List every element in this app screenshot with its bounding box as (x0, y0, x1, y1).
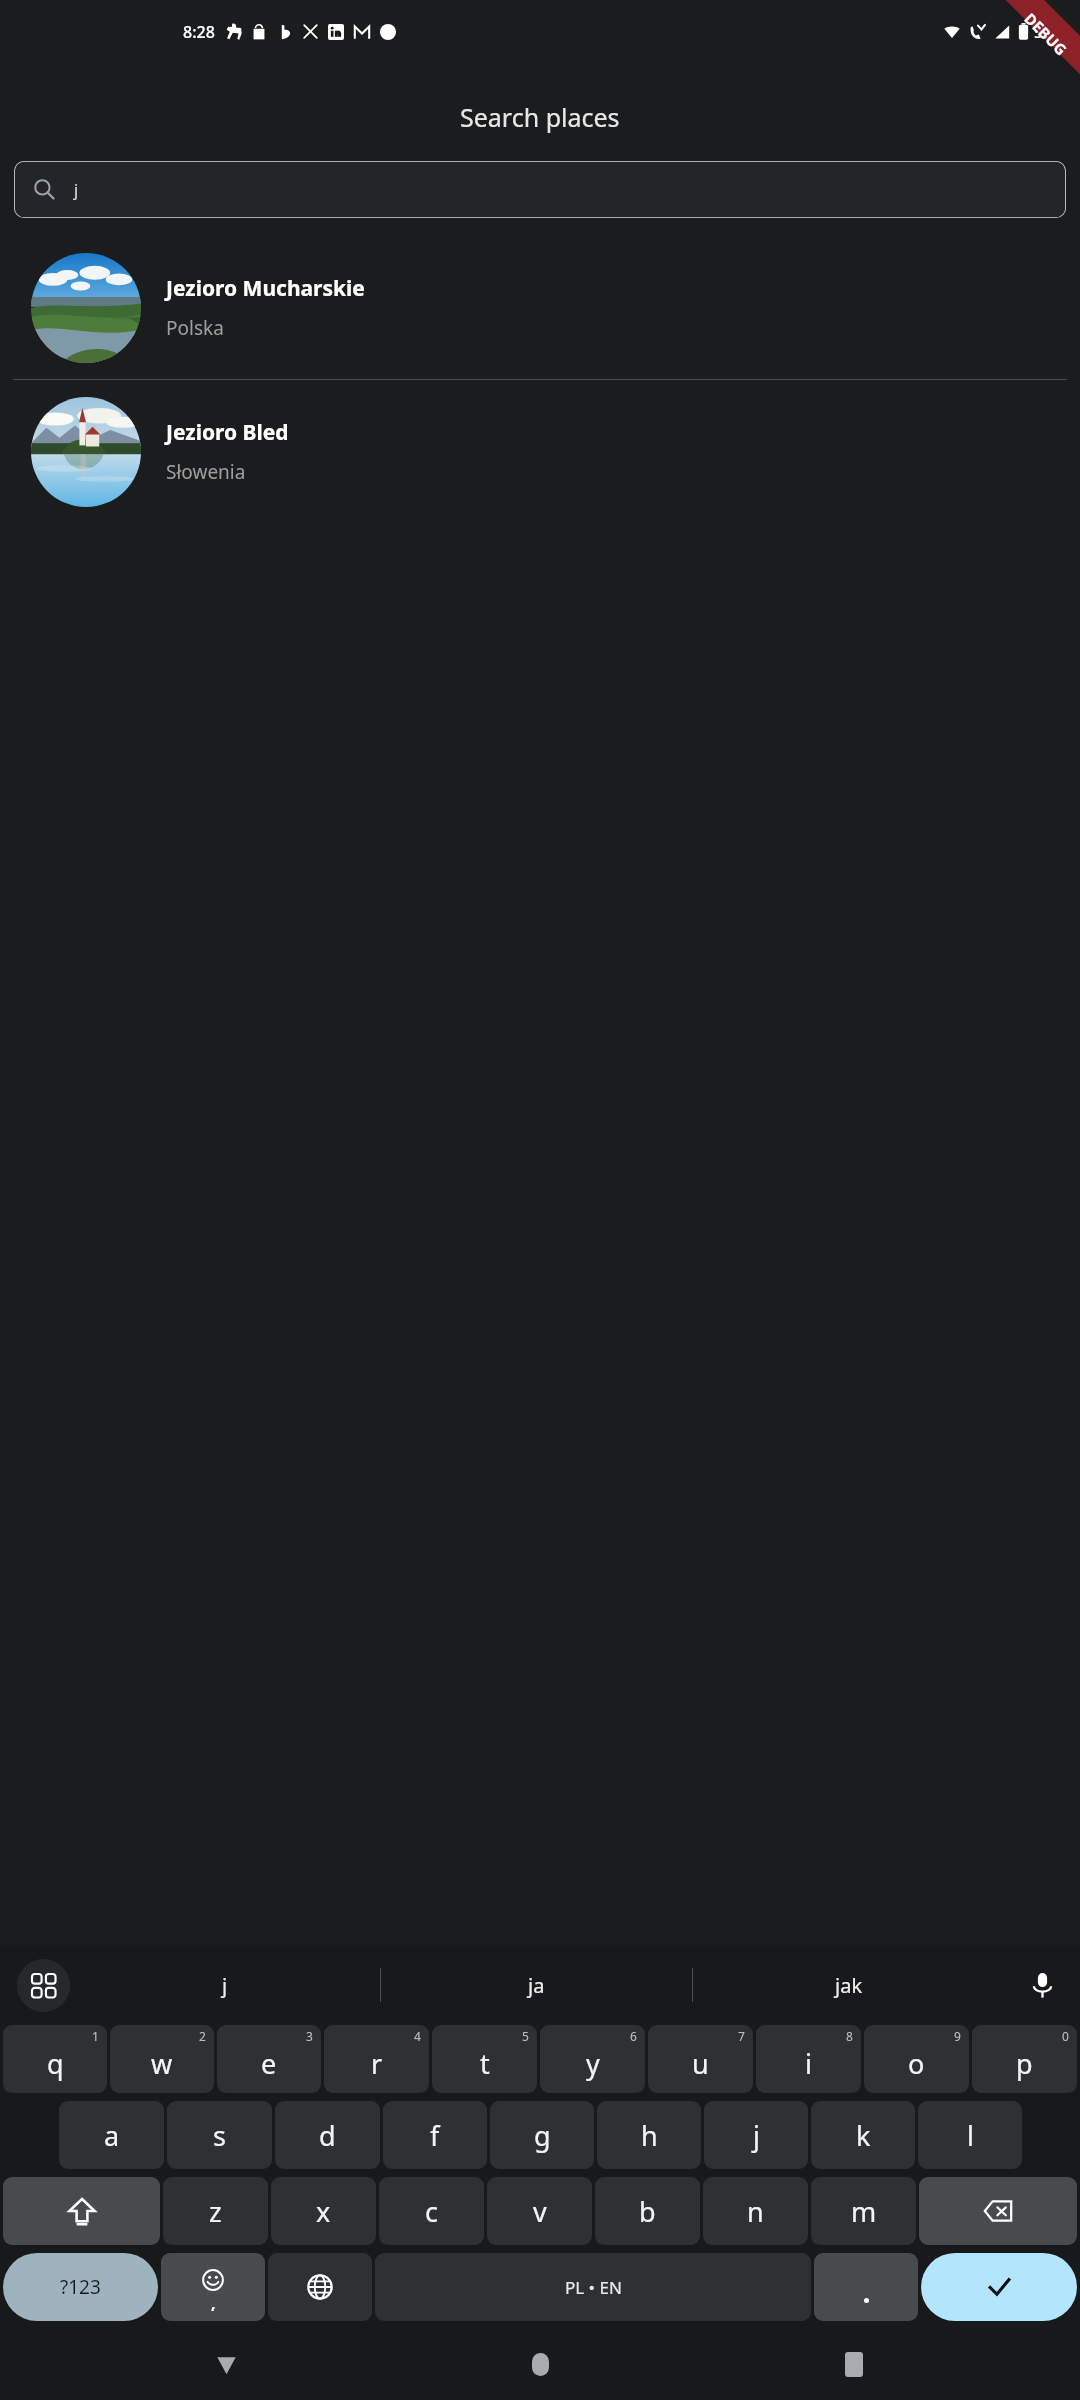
staticText: y (586, 2045, 600, 2082)
staticText: d (319, 2117, 336, 2154)
staticText: a (104, 2117, 120, 2154)
button[interactable]: 3 (217, 2025, 321, 2093)
button[interactable]: 4 (324, 2025, 429, 2093)
staticText: l (967, 2117, 974, 2154)
staticText: j (753, 2117, 760, 2154)
staticText: 9 (954, 2028, 961, 2044)
staticText: Polska (166, 315, 224, 341)
button[interactable]: ja (381, 1945, 692, 2025)
button[interactable]: 7 (648, 2025, 753, 2093)
staticText: x (316, 2193, 331, 2230)
staticText: b (639, 2193, 656, 2230)
staticText: 6 (630, 2028, 637, 2044)
staticText: 3 (306, 2028, 313, 2044)
staticText: s (213, 2117, 226, 2154)
staticText: 1 (92, 2028, 99, 2044)
button[interactable]: 2 (110, 2025, 214, 2093)
button[interactable]: 0 (972, 2025, 1077, 2093)
button[interactable]: Emoji (161, 2253, 265, 2321)
button[interactable]: Jezioro Mucharskie (0, 236, 1080, 379)
button[interactable]: Jezioro Bled (0, 380, 1080, 523)
button[interactable]: m (811, 2177, 916, 2245)
button[interactable]: f (383, 2101, 487, 2169)
button[interactable]: s (167, 2101, 272, 2169)
staticText: f (430, 2117, 440, 2154)
staticText: 5 (522, 2028, 529, 2044)
staticText: r (371, 2045, 383, 2082)
staticText: Jezioro Bled (166, 418, 289, 447)
staticText: z (209, 2193, 222, 2230)
staticText: m (851, 2193, 877, 2230)
staticText: i (805, 2045, 812, 2082)
staticText: e (261, 2045, 277, 2082)
staticText: ja (528, 1972, 545, 1999)
button[interactable]: g (490, 2101, 594, 2169)
button[interactable]: ?123 (3, 2253, 158, 2321)
staticText: jak (835, 1972, 863, 1999)
button[interactable]: 6 (540, 2025, 645, 2093)
button[interactable]: Backspace (919, 2177, 1077, 2245)
button[interactable]: Home (512, 2336, 568, 2392)
button[interactable]: Change language (268, 2253, 372, 2321)
button[interactable]: Period (814, 2253, 918, 2321)
staticText: q (47, 2045, 64, 2082)
staticText: DEBUG (1020, 8, 1071, 59)
staticText: h (641, 2117, 658, 2154)
staticText: v (533, 2193, 547, 2230)
staticText: PL • EN (565, 2276, 622, 2299)
staticText: 8 (846, 2028, 853, 2044)
staticText: 7 (738, 2028, 745, 2044)
button[interactable]: 8 (756, 2025, 861, 2093)
button[interactable]: b (595, 2177, 700, 2245)
staticText: 8:28 (183, 21, 215, 43)
staticText: 0 (1062, 2028, 1069, 2044)
button[interactable]: j (14, 161, 1066, 218)
staticText: , (211, 2292, 216, 2314)
button[interactable]: l (918, 2101, 1022, 2169)
staticText: u (692, 2045, 709, 2082)
staticText: Search places (460, 100, 620, 134)
button[interactable]: Enter (921, 2253, 1077, 2321)
button[interactable]: k (811, 2101, 915, 2169)
button[interactable]: n (703, 2177, 808, 2245)
button[interactable]: Voice input (1004, 1945, 1080, 2025)
staticText: n (747, 2193, 764, 2230)
button[interactable]: d (275, 2101, 380, 2169)
button[interactable]: x (271, 2177, 376, 2245)
button[interactable]: v (487, 2177, 592, 2245)
button[interactable]: j (70, 1945, 380, 2025)
staticText: g (534, 2117, 551, 2154)
staticText: 2 (199, 2028, 206, 2044)
button[interactable]: 1 (3, 2025, 107, 2093)
staticText: 4 (414, 2028, 421, 2044)
staticText: p (1016, 2045, 1033, 2082)
staticText: j (74, 179, 79, 201)
staticText: ?123 (60, 2274, 101, 2300)
staticText: w (151, 2045, 173, 2082)
staticText: k (856, 2117, 871, 2154)
staticText: j (222, 1972, 228, 1999)
button[interactable]: c (379, 2177, 484, 2245)
staticText: t (480, 2045, 490, 2082)
button[interactable]: j (704, 2101, 808, 2169)
button[interactable]: z (163, 2177, 268, 2245)
button[interactable]: PL • EN (375, 2253, 811, 2321)
staticText: c (425, 2193, 438, 2230)
button[interactable]: 9 (864, 2025, 969, 2093)
button[interactable]: Shift (3, 2177, 160, 2245)
staticText: Słowenia (166, 459, 246, 485)
button[interactable]: h (597, 2101, 701, 2169)
staticText: 57% (1034, 22, 1064, 42)
button[interactable]: Keyboard toolbar (17, 1959, 70, 2012)
button[interactable]: Recent apps (826, 2336, 882, 2392)
button[interactable]: 5 (432, 2025, 537, 2093)
staticText: o (908, 2045, 925, 2082)
staticText: Jezioro Mucharskie (166, 274, 365, 303)
button[interactable]: Back (198, 2336, 254, 2392)
button[interactable]: jak (693, 1945, 1004, 2025)
button[interactable]: a (59, 2101, 164, 2169)
